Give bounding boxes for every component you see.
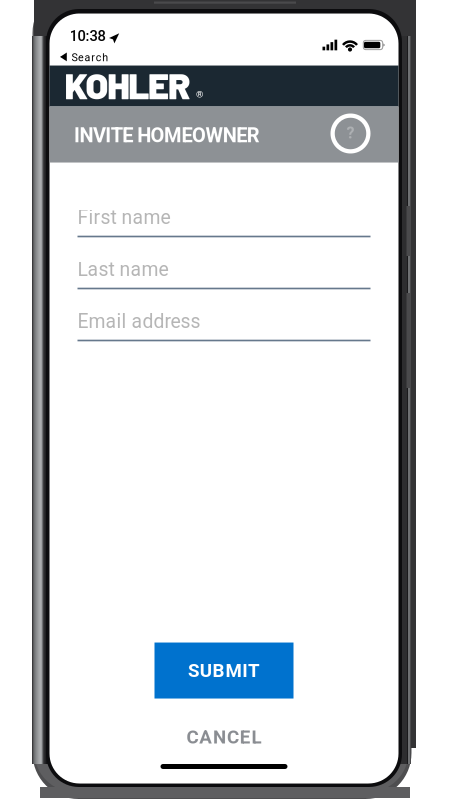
button[interactable]: Last name bbox=[77, 255, 370, 289]
staticText: SUBMIT bbox=[188, 660, 260, 681]
button[interactable]: Help bbox=[328, 111, 372, 155]
button[interactable]: Search bbox=[60, 49, 122, 65]
staticText: Last name bbox=[77, 258, 168, 281]
staticText: First name bbox=[77, 206, 170, 229]
staticText: ® bbox=[196, 89, 203, 100]
staticText: 10:38 bbox=[69, 27, 105, 45]
staticText: ? bbox=[346, 124, 354, 142]
button[interactable]: SUBMIT bbox=[154, 642, 293, 698]
button[interactable]: Email address bbox=[77, 307, 370, 341]
staticText: KOHLER bbox=[64, 62, 191, 106]
staticText: CANCEL bbox=[186, 726, 262, 748]
staticText: INVITE HOMEOWNER bbox=[74, 124, 260, 147]
staticText: Email address bbox=[77, 310, 200, 333]
button[interactable]: CANCEL bbox=[134, 715, 314, 759]
staticText: Search bbox=[71, 51, 108, 64]
button[interactable]: First name bbox=[77, 203, 370, 237]
